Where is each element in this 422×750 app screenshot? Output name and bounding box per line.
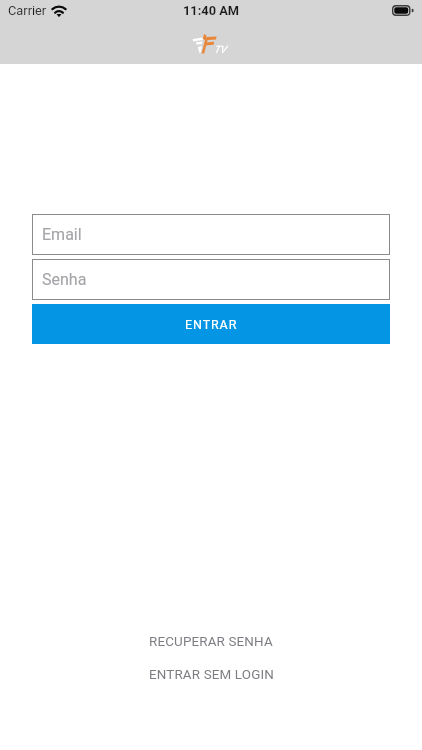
staticText: ENTRAR SEM LOGIN [149, 667, 274, 683]
button[interactable]: Email [32, 214, 390, 255]
staticText: Carrier [8, 3, 47, 18]
staticText: Email [42, 225, 82, 244]
staticText: ENTRAR [185, 317, 238, 332]
other: Battery full [392, 5, 415, 16]
button[interactable]: Senha [32, 259, 390, 300]
other: FTV logo [192, 34, 228, 53]
staticText: Senha [42, 270, 87, 289]
button[interactable]: ENTRAR SEM LOGIN [135, 662, 288, 688]
other: Wi-Fi signal [51, 5, 67, 17]
staticText: TV [214, 44, 227, 56]
staticText: 11:40 AM [183, 3, 239, 18]
button[interactable]: RECUPERAR SENHA [135, 629, 287, 655]
staticText: RECUPERAR SENHA [149, 634, 273, 650]
button[interactable]: ENTRAR [32, 304, 390, 344]
